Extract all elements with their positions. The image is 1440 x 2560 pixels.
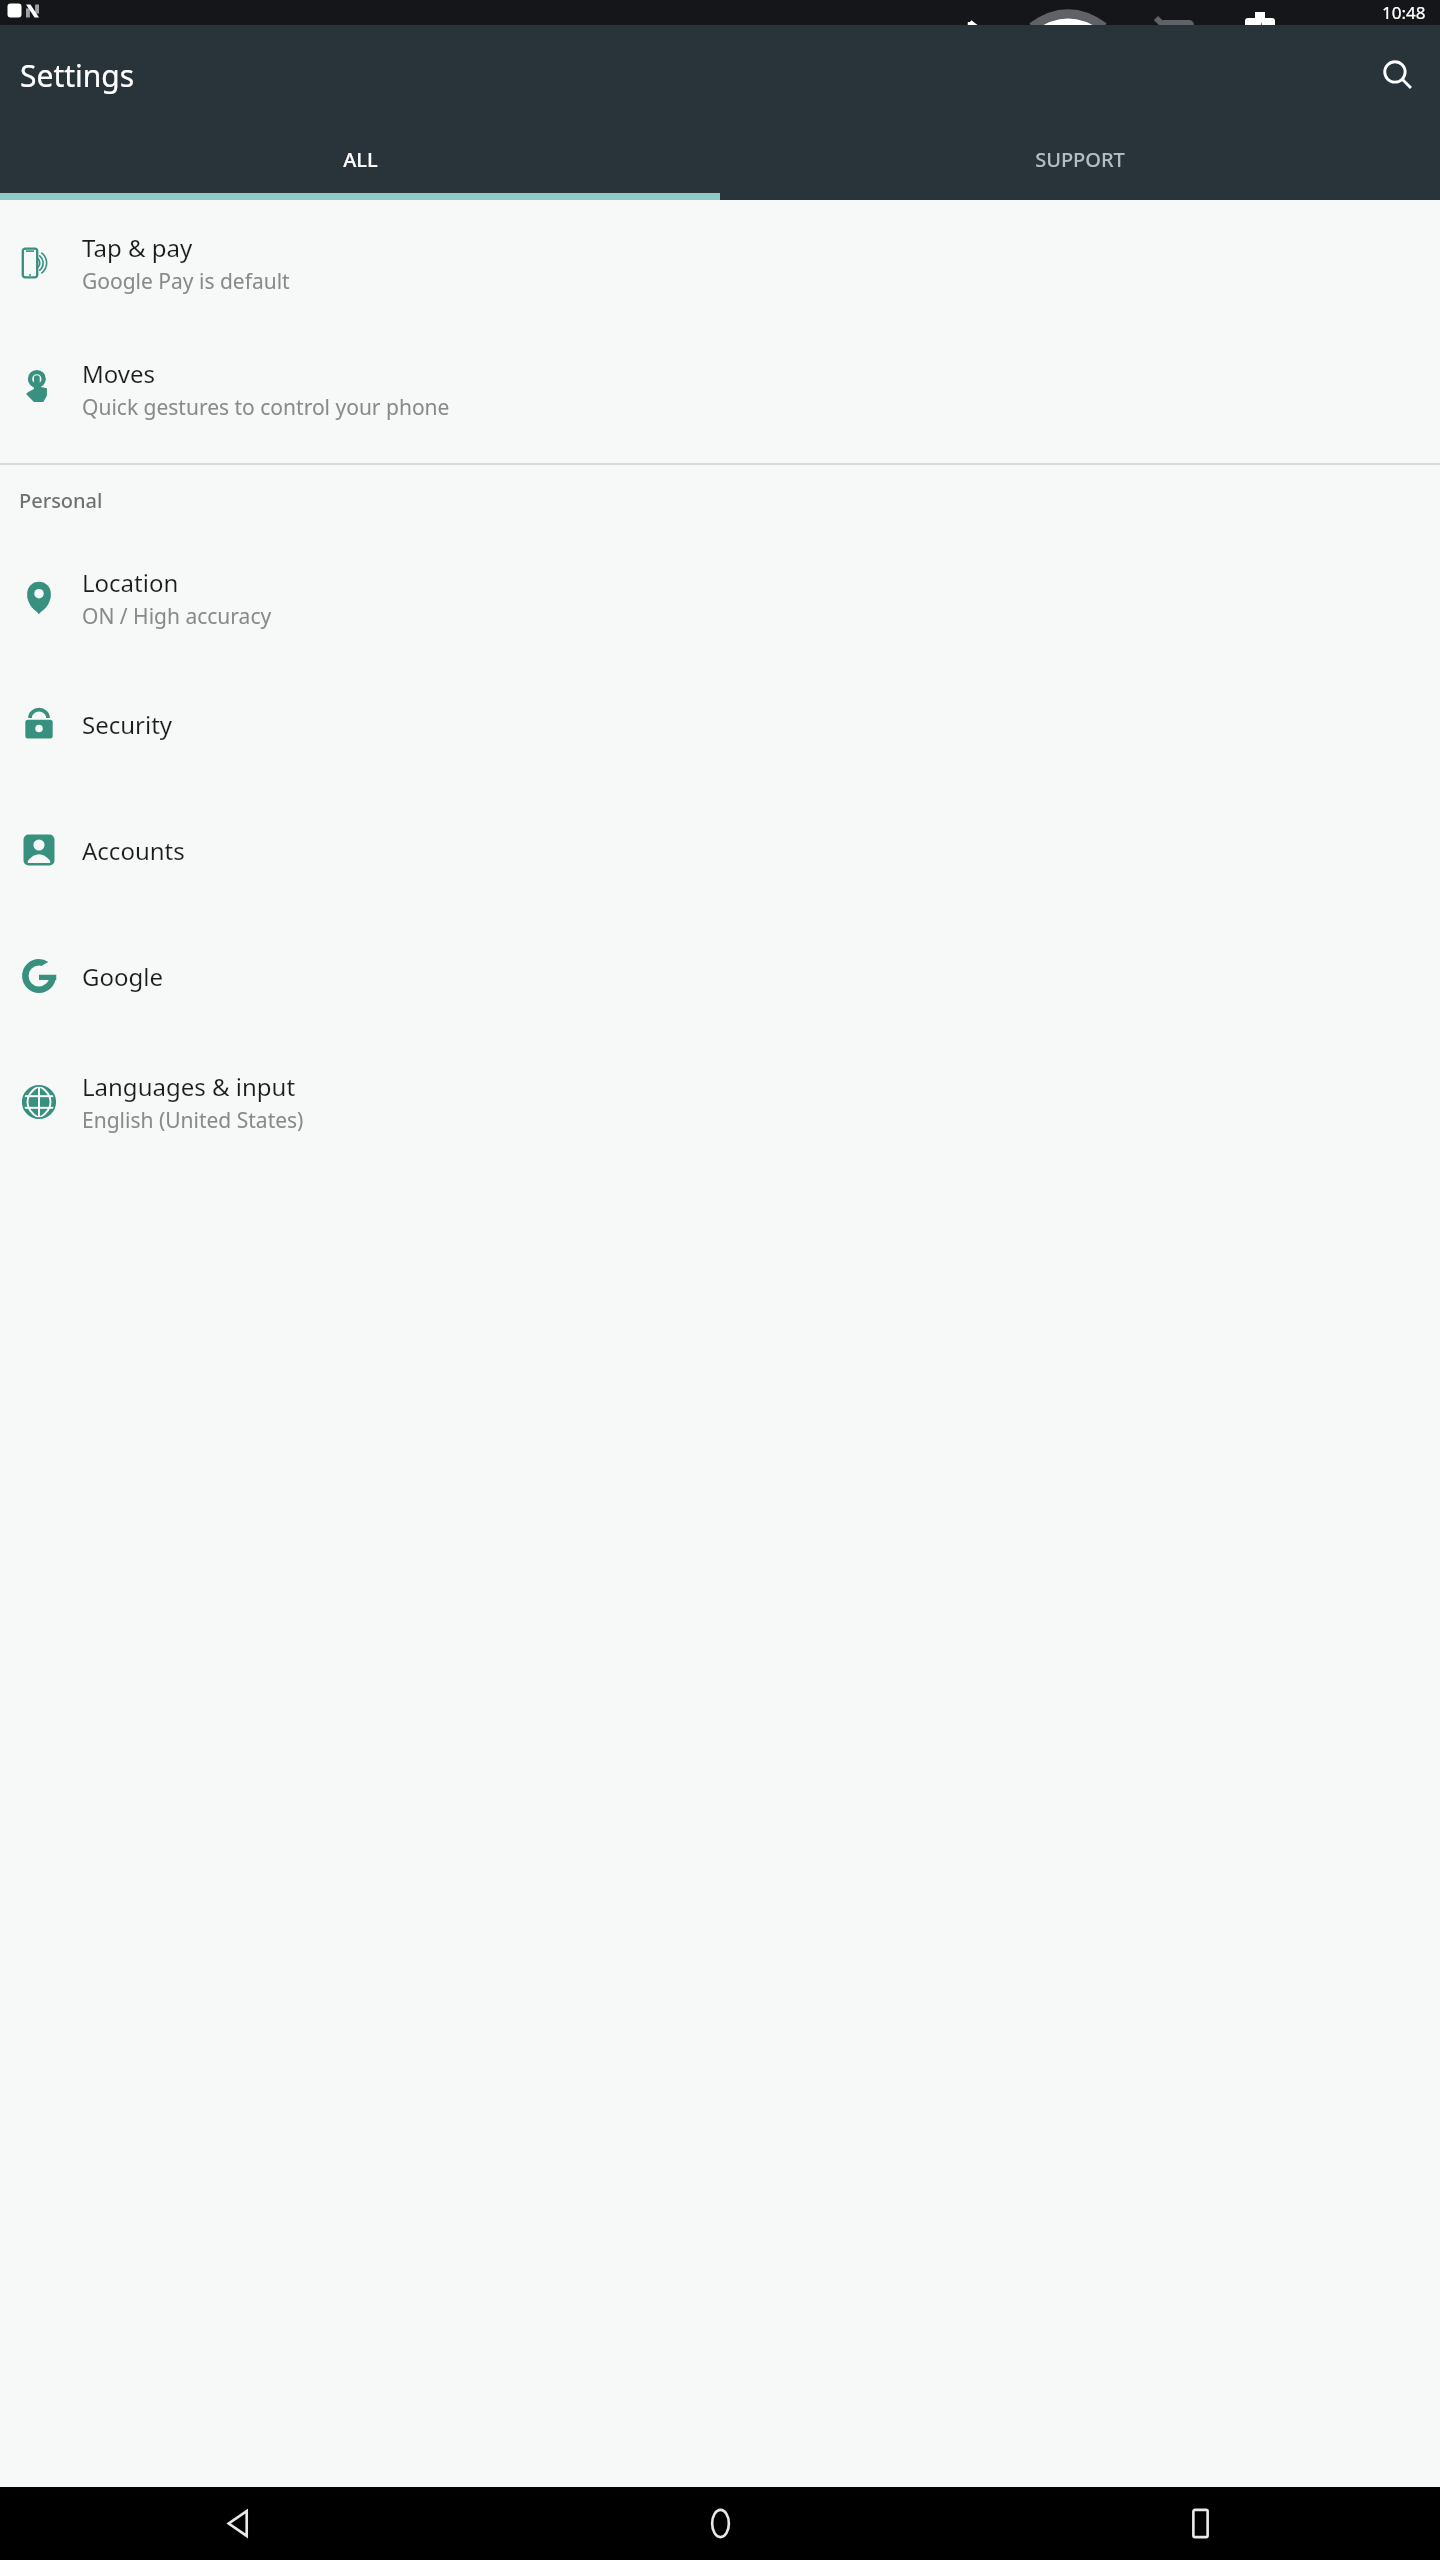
button[interactable]: Accounts <box>0 787 1440 913</box>
staticText: 10:48 <box>1382 1 1426 24</box>
staticText: Personal <box>19 487 103 514</box>
staticText: Google Pay is default <box>82 267 290 296</box>
staticText: Location <box>82 566 179 599</box>
staticText: Google <box>82 960 163 993</box>
staticText: Security <box>82 708 173 741</box>
button[interactable]: Home <box>480 2487 960 2560</box>
staticText: Settings <box>20 55 135 96</box>
button[interactable]: Tap & pay <box>0 200 1440 326</box>
staticText: Quick gestures to control your phone <box>82 393 450 422</box>
button[interactable]: Moves <box>0 326 1440 452</box>
button[interactable]: Google <box>0 913 1440 1039</box>
staticText: ALL <box>343 146 378 173</box>
staticText: Tap & pay <box>82 231 193 264</box>
staticText: ON / High accuracy <box>82 602 272 631</box>
staticText: Moves <box>82 357 156 390</box>
button[interactable]: Recents <box>960 2487 1440 2560</box>
staticText: English (United States) <box>82 1106 304 1135</box>
staticText: Accounts <box>82 834 185 867</box>
button[interactable]: ALL <box>0 125 720 193</box>
button[interactable]: SUPPORT <box>720 125 1440 193</box>
button[interactable]: Location <box>0 535 1440 661</box>
button[interactable]: Security <box>0 661 1440 787</box>
button[interactable]: Back <box>0 2487 480 2560</box>
button[interactable]: Search <box>1370 47 1426 103</box>
staticText: Languages & input <box>82 1070 296 1103</box>
staticText: SUPPORT <box>1035 146 1125 173</box>
button[interactable]: Languages & input <box>0 1039 1440 1165</box>
